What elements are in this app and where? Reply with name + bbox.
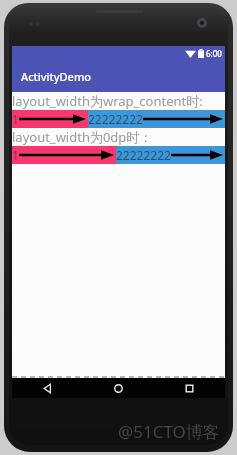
- button[interactable]: Recent apps: [154, 378, 225, 398]
- button[interactable]: Home: [83, 378, 154, 398]
- button[interactable]: 1: [12, 146, 225, 164]
- button[interactable]: 1: [12, 110, 225, 128]
- staticText: 22222222: [116, 147, 171, 163]
- staticText: 6:00: [206, 48, 222, 59]
- staticText: ActivityDemo: [21, 69, 92, 84]
- staticText: 1: [12, 147, 19, 163]
- button[interactable]: Back: [12, 378, 83, 398]
- staticText: layout_width为wrap_content时:: [12, 92, 203, 110]
- staticText: @51CTO博客: [118, 420, 220, 443]
- button[interactable]: layout_width为wrap_content时:: [12, 92, 225, 110]
- button[interactable]: ActivityDemo: [12, 61, 225, 92]
- staticText: layout_width为0dp时：: [12, 128, 153, 146]
- staticText: 1: [12, 111, 19, 127]
- staticText: 22222222: [88, 111, 143, 127]
- button[interactable]: layout_width为0dp时：: [12, 128, 225, 146]
